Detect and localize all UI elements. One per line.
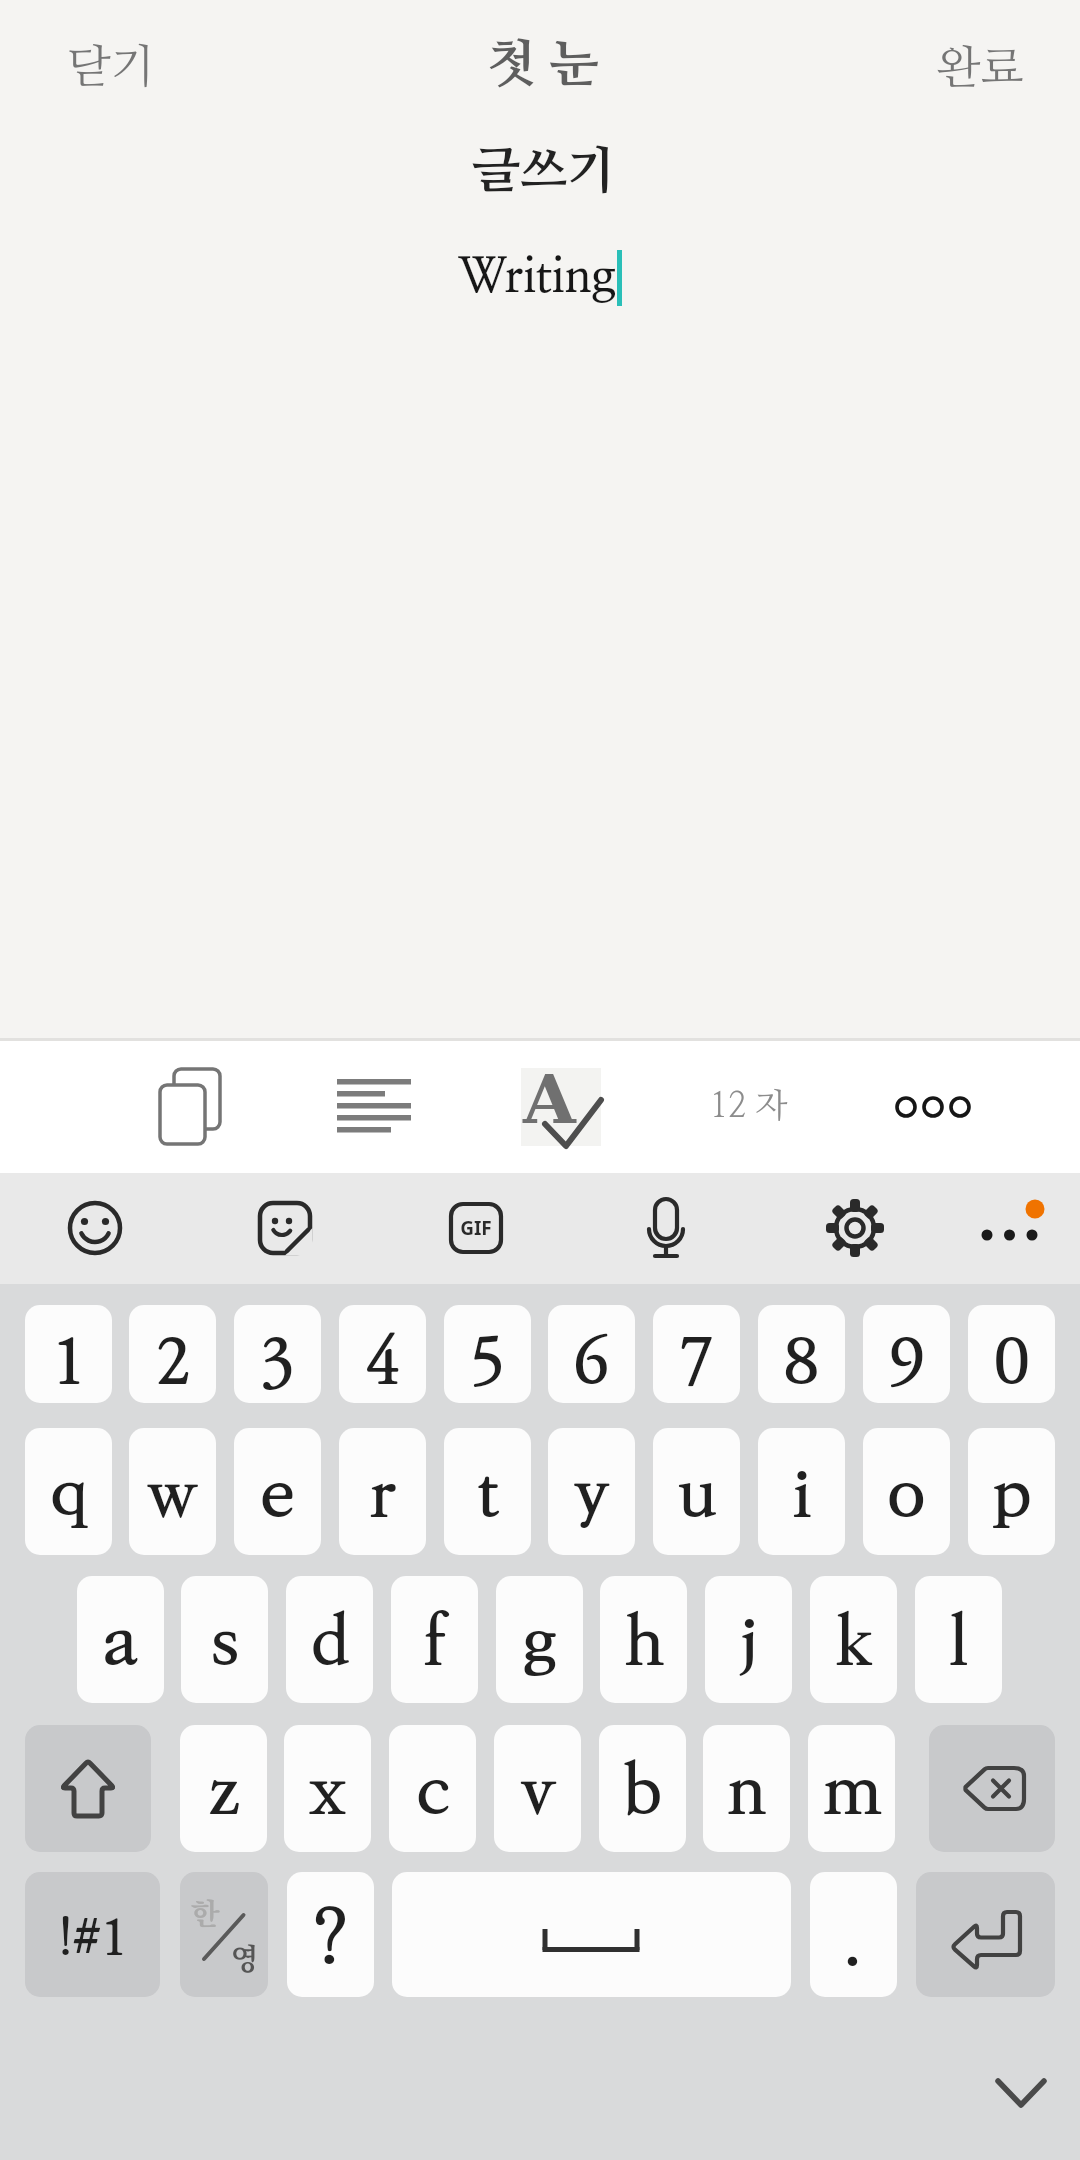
staticText: Writing [458, 254, 616, 302]
staticText: 2 [155, 1329, 191, 1397]
button[interactable]: p [968, 1428, 1055, 1555]
button[interactable]: c [389, 1725, 476, 1852]
button[interactable]: 7 [653, 1305, 740, 1403]
button[interactable]: e [234, 1428, 321, 1555]
button[interactable]: q [25, 1428, 112, 1555]
staticText: 8 [784, 1329, 820, 1397]
button[interactable]: 1 [25, 1305, 112, 1403]
staticText: q [49, 1459, 89, 1531]
staticText: A [523, 1059, 576, 1139]
button[interactable]: !#1 [25, 1872, 160, 1997]
button[interactable]: 3 [234, 1305, 321, 1403]
staticText: p [991, 1459, 1033, 1531]
button[interactable]: o [863, 1428, 950, 1555]
button[interactable]: z [180, 1725, 267, 1852]
button[interactable]: 5 [444, 1305, 531, 1403]
staticText: f [423, 1607, 447, 1679]
staticText: !#1 [58, 1913, 128, 1966]
button[interactable]: g [496, 1576, 583, 1703]
staticText: j [739, 1607, 758, 1679]
staticText: 7 [679, 1329, 715, 1397]
staticText: k [835, 1607, 873, 1679]
button[interactable] [333, 1072, 417, 1138]
button[interactable]: i [758, 1428, 845, 1555]
button[interactable]: 8 [758, 1305, 845, 1403]
button[interactable]: k [810, 1576, 897, 1703]
button[interactable] [25, 1725, 151, 1852]
button[interactable]: r [339, 1428, 426, 1555]
button[interactable] [392, 1872, 791, 1997]
staticText: i [791, 1459, 813, 1531]
staticText: 1 [51, 1329, 87, 1397]
button[interactable]: d [286, 1576, 373, 1703]
button[interactable] [638, 1196, 694, 1262]
staticText: 4 [365, 1329, 401, 1397]
staticText: 5 [470, 1329, 506, 1397]
button[interactable]: t [444, 1428, 531, 1555]
staticText: GIF [460, 1215, 492, 1241]
button[interactable] [975, 1197, 1047, 1245]
button[interactable] [67, 1200, 123, 1256]
staticText: d [310, 1607, 350, 1679]
button[interactable] [825, 1198, 885, 1258]
staticText: g [521, 1607, 558, 1679]
staticText: 첫 눈 [487, 40, 598, 91]
button[interactable]: l [915, 1576, 1002, 1703]
staticText: 3 [260, 1329, 296, 1397]
staticText: 완료 [936, 46, 1024, 92]
staticText: u [677, 1459, 717, 1531]
staticText: a [102, 1607, 139, 1679]
button[interactable]: 완료 [680, 0, 1080, 139]
button[interactable]: m [808, 1725, 895, 1852]
button[interactable]: n [703, 1725, 790, 1852]
button[interactable]: w [129, 1428, 216, 1555]
staticText: b [623, 1756, 663, 1828]
staticText: 0 [994, 1329, 1030, 1397]
staticText: s [210, 1607, 239, 1679]
staticText: 12 자 [709, 1090, 788, 1124]
button[interactable]: 2 [129, 1305, 216, 1403]
button[interactable]: h [600, 1576, 687, 1703]
button[interactable]: 닫기 [0, 0, 411, 138]
staticText: 6 [574, 1329, 610, 1397]
button[interactable] [988, 2070, 1054, 2120]
staticText: w [147, 1459, 198, 1531]
button[interactable] [521, 1068, 601, 1146]
staticText: x [308, 1756, 347, 1828]
staticText: . [843, 1906, 865, 1980]
staticText: e [259, 1459, 296, 1531]
button[interactable] [158, 1066, 222, 1148]
button[interactable]: u [653, 1428, 740, 1555]
staticText: o [886, 1459, 927, 1531]
button[interactable]: y [548, 1428, 635, 1555]
button[interactable]: a [77, 1576, 164, 1703]
button[interactable]: 6 [548, 1305, 635, 1403]
staticText: m [822, 1756, 882, 1828]
button[interactable]: GIF [448, 1200, 504, 1256]
button[interactable]: v [494, 1725, 581, 1852]
button[interactable]: s [181, 1576, 268, 1703]
button[interactable]: b [599, 1725, 686, 1852]
button[interactable]: x [284, 1725, 371, 1852]
button[interactable]: 4 [339, 1305, 426, 1403]
staticText: ? [313, 1899, 348, 1980]
button[interactable]: . [810, 1872, 897, 1997]
staticText: v [521, 1756, 555, 1828]
button[interactable]: j [705, 1576, 792, 1703]
staticText: z [208, 1756, 240, 1828]
button[interactable] [891, 1092, 973, 1122]
button[interactable] [929, 1725, 1055, 1852]
button[interactable] [916, 1872, 1055, 1997]
staticText: l [949, 1607, 969, 1679]
staticText: c [415, 1756, 451, 1828]
button[interactable]: ? [287, 1872, 374, 1997]
staticText: 영 [230, 1943, 259, 1976]
button[interactable]: 한 [180, 1872, 268, 1997]
staticText: 닫기 [67, 45, 155, 91]
staticText: 9 [889, 1329, 925, 1397]
button[interactable]: 0 [968, 1305, 1055, 1403]
staticText: t [476, 1459, 500, 1531]
button[interactable] [257, 1200, 313, 1256]
button[interactable]: f [391, 1576, 478, 1703]
button[interactable]: 9 [863, 1305, 950, 1403]
